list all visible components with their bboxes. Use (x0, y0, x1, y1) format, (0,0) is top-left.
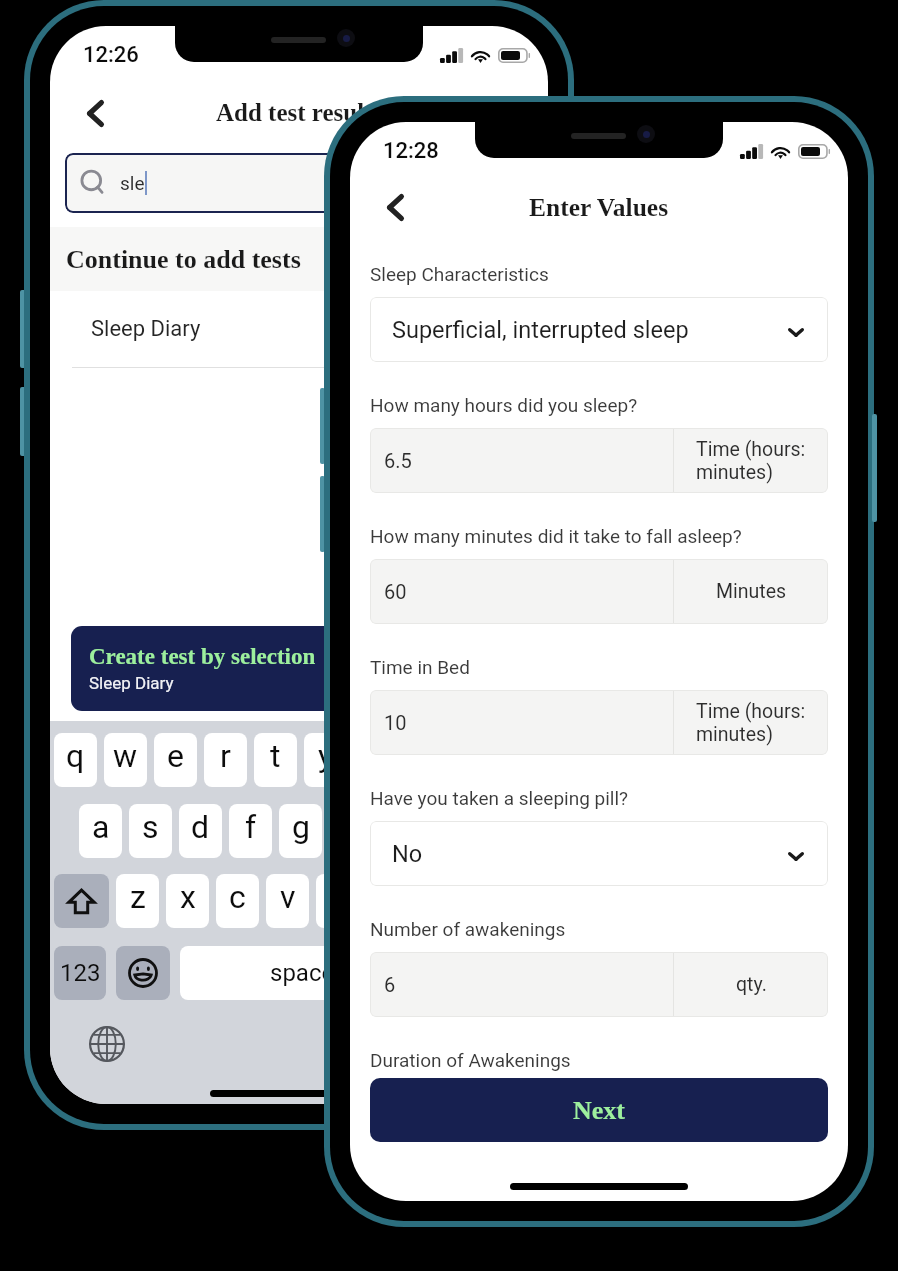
staticText: Superficial, interrupted sleep (392, 316, 689, 344)
staticText: h (342, 808, 360, 846)
button[interactable]: j (379, 804, 422, 858)
staticText: Sleep Diary (91, 316, 201, 342)
staticText: y (318, 737, 334, 775)
button[interactable]: f (229, 804, 272, 858)
staticText: minutes) (696, 723, 773, 746)
button[interactable]: Back (371, 183, 419, 231)
staticText: Minutes (716, 580, 787, 603)
staticText: g (292, 808, 310, 846)
staticText: i (422, 737, 430, 775)
button[interactable]: 123 (54, 946, 106, 1000)
button[interactable]: z (116, 874, 159, 928)
button[interactable]: q (54, 733, 97, 787)
button[interactable]: Sleep Diary (50, 291, 548, 367)
button[interactable]: d (179, 804, 222, 858)
button[interactable]: c (216, 874, 259, 928)
staticText: Have you taken a sleeping pill? (370, 787, 629, 809)
staticText: c (229, 878, 246, 916)
button[interactable]: 6.5 (370, 428, 828, 493)
staticText: j (397, 808, 405, 846)
staticText: How many hours did you sleep? (370, 394, 638, 416)
staticText: r (220, 737, 231, 775)
staticText: 123 (60, 959, 101, 987)
staticText: Time in Bed (370, 656, 470, 678)
button[interactable]: Shift (54, 874, 109, 928)
button[interactable]: b (316, 874, 359, 928)
staticText: qty. (736, 973, 767, 996)
staticText: Duration of Awakenings (370, 1049, 571, 1071)
staticText: minutes) (696, 461, 773, 484)
button[interactable]: Superficial, interrupted sleep (370, 297, 828, 362)
button[interactable]: t (254, 733, 297, 787)
staticText: a (92, 808, 110, 846)
staticText: sle (120, 172, 145, 194)
staticText: Time (hours: (696, 438, 806, 461)
button[interactable]: x (166, 874, 209, 928)
staticText: 60 (384, 580, 407, 603)
button[interactable]: Emoji (116, 946, 170, 1000)
staticText: Continue to add tests (66, 245, 301, 274)
staticText: 12:28 (383, 138, 439, 164)
staticText: Add test results (216, 99, 383, 127)
staticText: f (245, 808, 257, 846)
button[interactable]: k (429, 804, 472, 858)
button[interactable]: No (370, 821, 828, 886)
staticText: u (367, 737, 385, 775)
button[interactable]: 6 (370, 952, 828, 1017)
staticText: p (517, 737, 535, 775)
staticText: 12:26 (83, 42, 139, 68)
button[interactable]: s (129, 804, 172, 858)
staticText: n (379, 878, 397, 916)
staticText: k (442, 808, 459, 846)
button[interactable]: i (404, 733, 447, 787)
button[interactable]: v (266, 874, 309, 928)
button[interactable]: g (279, 804, 322, 858)
staticText: v (280, 878, 296, 916)
button[interactable]: Create test by selection (71, 626, 527, 711)
staticText: d (191, 808, 210, 846)
staticText: e (167, 737, 184, 775)
staticText: How many minutes did it take to fall asl… (370, 525, 742, 547)
button[interactable]: Change keyboard language (89, 1026, 125, 1062)
button[interactable]: u (354, 733, 397, 787)
button[interactable]: Next (370, 1078, 828, 1142)
staticText: 6 (384, 973, 396, 996)
button[interactable]: 60 (370, 559, 828, 624)
staticText: Create test by selection (89, 644, 316, 669)
staticText: space (270, 959, 335, 987)
button[interactable]: space (180, 946, 424, 1000)
staticText: Number of awakenings (370, 918, 566, 940)
button[interactable]: Back (71, 89, 119, 137)
button[interactable]: n (366, 874, 409, 928)
staticText: s (142, 808, 159, 846)
button[interactable]: l (479, 804, 522, 858)
staticText: Enter Values (529, 193, 669, 221)
staticText: Next (573, 1096, 625, 1125)
staticText: x (180, 878, 196, 916)
button[interactable]: sle (65, 153, 533, 213)
staticText: w (113, 737, 138, 775)
button[interactable]: r (204, 733, 247, 787)
staticText: b (329, 878, 347, 916)
button[interactable]: o (454, 733, 497, 787)
button[interactable]: y (304, 733, 347, 787)
staticText: Time (hours: (696, 700, 806, 723)
staticText: q (66, 737, 85, 775)
staticText: 10 (384, 711, 407, 734)
staticText: m (423, 878, 452, 916)
button[interactable]: e (154, 733, 197, 787)
staticText: Sleep Diary (89, 673, 174, 693)
button[interactable]: a (79, 804, 122, 858)
staticText: o (466, 737, 485, 775)
staticText: No (392, 840, 423, 868)
staticText: 6.5 (384, 449, 412, 472)
button[interactable]: p (504, 733, 547, 787)
staticText: z (130, 878, 146, 916)
staticText: Sleep Characteristics (370, 263, 549, 285)
button[interactable]: m (416, 874, 459, 928)
staticText: l (497, 808, 505, 846)
button[interactable]: 10 (370, 690, 828, 755)
staticText: t (270, 737, 281, 775)
button[interactable]: w (104, 733, 147, 787)
button[interactable]: h (329, 804, 372, 858)
